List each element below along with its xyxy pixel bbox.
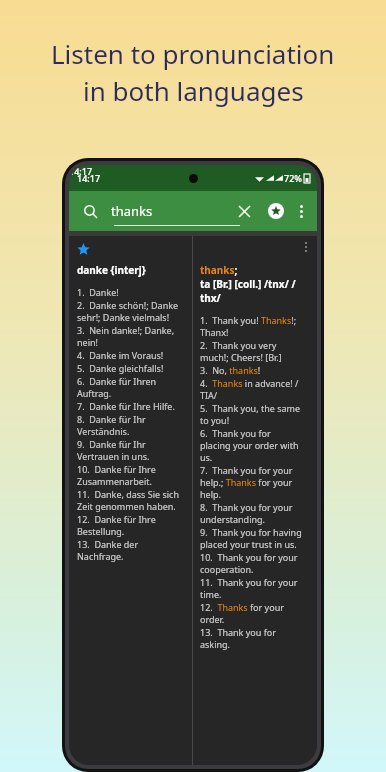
- staticText: 8. Danke für Ihr Verständnis.: [77, 413, 186, 437]
- staticText: 11. Thank you for your time.: [200, 576, 303, 600]
- staticText: 13. Danke der Nachfrage.: [77, 538, 186, 562]
- staticText: 2. Danke schön!; Danke sehr!; Danke viel…: [77, 299, 186, 323]
- staticText: in both languages: [83, 73, 304, 108]
- staticText: 8. Thank you for your understanding.: [200, 501, 303, 525]
- staticText: 5. Danke gleichfalls!: [77, 362, 164, 374]
- staticText: 10. Danke für Ihre Zusammenarbeit.: [77, 463, 186, 487]
- staticText: 72%: [284, 172, 302, 184]
- staticText: 6. Danke für Ihren Auftrag.: [77, 375, 186, 399]
- staticText: 13. Thank you for asking.: [200, 626, 303, 650]
- staticText: 3. Nein danke!; Danke, nein!: [77, 324, 186, 348]
- staticText: 10. Thank you for your cooperation.: [200, 551, 303, 575]
- staticText: 9. Danke für Ihr Vertrauen in uns.: [77, 438, 186, 462]
- button[interactable]: danke {interj}: [69, 236, 317, 765]
- staticText: 11. Danke, dass Sie sich Zeit genommen h…: [77, 488, 186, 512]
- staticText: thanks: [111, 202, 153, 220]
- staticText: 12. Thanks for your order.: [200, 601, 303, 625]
- staticText: danke {interj}: [77, 263, 146, 277]
- staticText: 12. Danke für Ihre Bestellung.: [77, 513, 186, 537]
- staticText: 6. Thank you for placing your order with…: [200, 427, 303, 463]
- button[interactable]: Search: [79, 200, 101, 222]
- staticText: 5. Thank you, the same to you!: [200, 402, 303, 426]
- staticText: 4. Thanks in advance! /TIA/: [200, 377, 303, 401]
- staticText: 2. Thank you very much!; Cheers! [Br.]: [200, 339, 303, 363]
- button[interactable]: More options: [289, 199, 313, 223]
- staticText: thanks;: [200, 263, 238, 277]
- button[interactable]: Entry options: [299, 240, 313, 254]
- button[interactable]: Clear: [231, 198, 257, 224]
- staticText: 1. Thank you! Thanks!; Thanx!: [200, 314, 303, 338]
- staticText: Listen to pronunciation: [51, 36, 335, 71]
- staticText: 14:17: [77, 172, 101, 184]
- button[interactable]: Favorites: [263, 198, 289, 224]
- staticText: 7. Thank you for your help.; Thanks for …: [200, 464, 303, 500]
- staticText: 9. Thank you for having placed your trus…: [200, 526, 303, 550]
- staticText: 4. Danke im Voraus!: [77, 349, 164, 361]
- staticText: 14:17: [69, 165, 93, 177]
- staticText: ta [Br.] [coll.] /tnx/ /thx/: [200, 277, 303, 305]
- staticText: 1. Danke!: [77, 286, 119, 298]
- staticText: 7. Danke für Ihre Hilfe.: [77, 400, 175, 412]
- staticText: 3. No, thanks!: [200, 364, 261, 376]
